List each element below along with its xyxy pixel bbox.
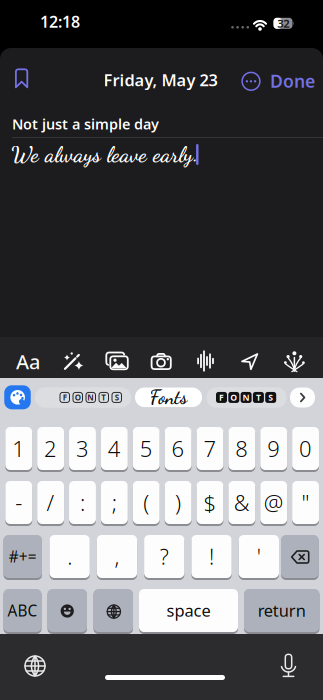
- staticText: !: [209, 542, 214, 571]
- button[interactable]: $: [196, 481, 223, 525]
- staticText: 5: [140, 433, 153, 463]
- button[interactable]: Genmoji: [284, 351, 305, 372]
- button[interactable]: ?: [144, 535, 184, 579]
- staticText: ?: [160, 542, 169, 571]
- staticText: T: [101, 392, 106, 403]
- button[interactable]: Text format: [16, 348, 40, 375]
- button[interactable]: ": [292, 481, 319, 525]
- staticText: space: [166, 599, 210, 622]
- staticText: S: [115, 392, 119, 403]
- button[interactable]: Bookmark: [14, 68, 30, 90]
- staticText: .: [67, 542, 72, 571]
- staticText: N: [243, 391, 250, 403]
- button[interactable]: Font colors: [4, 385, 31, 409]
- staticText: #+=: [9, 546, 37, 567]
- button[interactable]: Emoji: [47, 589, 87, 633]
- staticText: S: [268, 391, 273, 403]
- button[interactable]: ,: [97, 535, 137, 579]
- staticText: &: [234, 487, 250, 517]
- staticText: 32: [277, 16, 289, 31]
- staticText: 4: [108, 433, 121, 463]
- button[interactable]: Done: [270, 69, 315, 93]
- button[interactable]: 5: [133, 427, 160, 471]
- button[interactable]: Dictation: [280, 653, 296, 677]
- button[interactable]: Location: [241, 352, 259, 369]
- button[interactable]: .: [49, 535, 90, 579]
- staticText: N: [87, 392, 94, 403]
- staticText: /: [47, 487, 55, 517]
- button[interactable]: 8: [228, 427, 255, 471]
- staticText: @: [264, 487, 284, 517]
- staticText: Friday, May 23: [103, 69, 217, 91]
- staticText: 8: [235, 433, 248, 463]
- button[interactable]: More fonts: [290, 387, 315, 407]
- staticText: O: [230, 391, 237, 403]
- button[interactable]: Camera: [151, 353, 172, 370]
- staticText: 1: [12, 433, 25, 463]
- button[interactable]: /: [37, 481, 64, 525]
- staticText: We always leave early.: [11, 141, 198, 168]
- staticText: Not just a simple day: [12, 114, 159, 134]
- button[interactable]: -: [5, 481, 32, 525]
- staticText: 3: [76, 433, 89, 463]
- staticText: Fonts: [149, 385, 187, 409]
- staticText: ": [302, 487, 310, 517]
- button[interactable]: #+=: [3, 535, 42, 579]
- staticText: 6: [172, 433, 185, 463]
- staticText: (: [143, 487, 149, 517]
- button[interactable]: :: [69, 481, 96, 525]
- staticText: Done: [270, 69, 315, 93]
- button[interactable]: ': [239, 535, 279, 579]
- staticText: 9: [267, 433, 280, 463]
- staticText: $: [203, 487, 216, 517]
- button[interactable]: !: [191, 535, 232, 579]
- staticText: -: [15, 487, 22, 517]
- button[interactable]: &: [228, 481, 255, 525]
- staticText: O: [75, 392, 81, 403]
- button[interactable]: F: [35, 387, 131, 408]
- staticText: 2: [44, 433, 57, 463]
- staticText: ABC: [7, 600, 37, 621]
- staticText: T: [256, 391, 261, 403]
- staticText: 7: [203, 433, 216, 463]
- staticText: ;: [112, 487, 117, 517]
- button[interactable]: F: [206, 387, 286, 408]
- staticText: return: [258, 599, 306, 622]
- staticText: ': [257, 542, 261, 571]
- button[interactable]: Magic wand: [62, 351, 82, 371]
- staticText: 0: [299, 433, 312, 463]
- staticText: Aa: [16, 348, 40, 375]
- button[interactable]: (: [133, 481, 160, 525]
- staticText: F: [219, 391, 224, 403]
- button[interactable]: Switch keyboard: [24, 655, 46, 677]
- staticText: ,: [114, 542, 119, 571]
- button[interactable]: More options: [241, 71, 261, 91]
- button[interactable]: 7: [196, 427, 223, 471]
- button[interactable]: ): [165, 481, 192, 525]
- button[interactable]: 0: [292, 427, 319, 471]
- button[interactable]: 3: [69, 427, 96, 471]
- staticText: :: [80, 487, 85, 517]
- button[interactable]: space: [139, 589, 238, 633]
- button[interactable]: ABC: [3, 589, 41, 633]
- button[interactable]: ;: [101, 481, 128, 525]
- button[interactable]: 6: [165, 427, 192, 471]
- button[interactable]: Photos: [105, 351, 128, 370]
- button[interactable]: 4: [101, 427, 128, 471]
- button[interactable]: 2: [37, 427, 64, 471]
- button[interactable]: 9: [260, 427, 287, 471]
- staticText: ): [175, 487, 181, 517]
- staticText: 12:18: [40, 11, 80, 32]
- staticText: F: [63, 392, 67, 403]
- button[interactable]: Delete: [281, 535, 319, 579]
- button[interactable]: 1: [5, 427, 32, 471]
- button[interactable]: Audio recording: [197, 350, 214, 371]
- button[interactable]: @: [260, 481, 287, 525]
- button[interactable]: Fonts: [135, 388, 202, 407]
- button[interactable]: return: [244, 589, 319, 633]
- button[interactable]: Next keyboard: [93, 589, 133, 633]
